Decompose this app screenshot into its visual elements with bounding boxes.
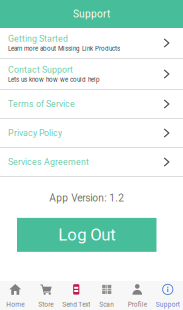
button[interactable]: Contact Support [0,59,183,90]
button[interactable]: Home [0,281,30,310]
button[interactable]: Getting Started [0,28,183,59]
staticText: Support [73,8,110,20]
button[interactable]: Profile [122,281,152,310]
staticText: Store [38,301,53,308]
button[interactable]: Log Out [17,218,156,252]
button[interactable]: Privacy Policy [0,119,183,148]
staticText: Home [6,301,24,308]
button[interactable]: Services Agreement [0,148,183,177]
staticText: Scan [99,301,114,308]
staticText: Support [156,301,180,308]
staticText: Getting Started [8,34,68,44]
staticText: App Version: 1.2 [49,192,124,204]
button[interactable]: Terms of Service [0,90,183,119]
button[interactable]: Send Text [61,281,91,310]
staticText: Lets us know how we could help [8,76,100,83]
staticText: Log Out [58,225,115,245]
button[interactable]: Store [30,281,61,310]
staticText: Send Text [62,301,90,308]
staticText: Learn more about Missing Link Products [8,45,120,52]
staticText: Services Agreement [8,157,89,167]
staticText: Contact Support [8,65,73,75]
staticText: Privacy Policy [8,128,62,138]
staticText: Profile [128,301,147,308]
staticText: Terms of Service [8,99,75,109]
button[interactable]: Scan [91,281,122,310]
button[interactable]: Support [152,281,183,310]
